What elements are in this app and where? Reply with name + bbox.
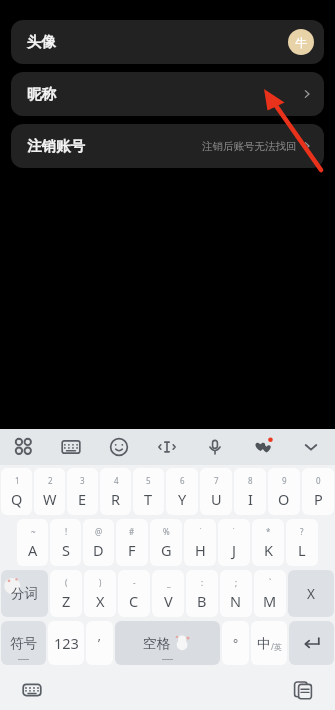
button[interactable]: _ [152, 570, 184, 617]
staticText: A [28, 540, 38, 560]
staticText: 5 [146, 475, 151, 486]
staticText: ° [233, 635, 239, 651]
button[interactable]: Apps [0, 429, 47, 465]
staticText: 8 [248, 475, 253, 486]
staticText: 2 [48, 475, 53, 486]
staticText: 分词 [11, 585, 38, 602]
button[interactable]: Voice input [191, 429, 239, 465]
staticText: N [230, 591, 242, 611]
staticText: X [96, 591, 105, 611]
button[interactable]: ( [50, 570, 82, 617]
staticText: ! [65, 526, 68, 537]
staticText: B [197, 591, 207, 611]
button[interactable]: 7 [200, 468, 232, 515]
staticText: 1 [15, 475, 20, 486]
button[interactable]: : [186, 570, 218, 617]
button[interactable]: ˙ [218, 519, 250, 566]
staticText: /英 [271, 641, 282, 652]
staticText: H [195, 540, 206, 560]
staticText: X [307, 585, 315, 603]
staticText: J [232, 540, 236, 560]
staticText: ~ [31, 526, 36, 537]
staticText: ; [235, 577, 238, 588]
staticText: G [161, 540, 172, 560]
staticText: 中 [257, 635, 271, 652]
staticText: W [43, 489, 57, 509]
button[interactable]: ? [286, 519, 318, 566]
staticText: S [62, 540, 70, 560]
button[interactable]: ˙ [184, 519, 216, 566]
staticText: E [78, 489, 87, 509]
staticText: C [129, 591, 139, 611]
staticText: # [129, 526, 135, 537]
staticText: Z [62, 591, 71, 611]
button[interactable]: # [116, 519, 148, 566]
button[interactable]: @ [83, 519, 114, 566]
button[interactable]: 9 [268, 468, 300, 515]
staticText: K [264, 540, 273, 560]
button[interactable]: * [252, 519, 284, 566]
staticText: 符号 [10, 635, 37, 652]
button[interactable]: Text cursor [143, 429, 191, 465]
button[interactable]: Avatar [288, 29, 314, 55]
staticText: ˙ [200, 526, 202, 537]
button[interactable]: 0 [302, 468, 334, 515]
staticText: @ [95, 526, 103, 537]
button[interactable]: 分词 [1, 570, 48, 617]
button[interactable]: Keyboard [47, 429, 95, 465]
button[interactable]: Clipboard [287, 674, 319, 706]
button[interactable]: 123 [48, 621, 84, 665]
staticText: 6 [180, 475, 185, 486]
button[interactable]: 昵称 [11, 72, 324, 116]
button[interactable]: ) [84, 570, 116, 617]
button[interactable]: 1 [1, 468, 32, 515]
button[interactable]: 2 [34, 468, 65, 515]
staticText: % [163, 526, 170, 537]
staticText: U [211, 489, 222, 509]
button[interactable]: ; [220, 570, 252, 617]
staticText: M [263, 591, 277, 611]
button[interactable]: Stickers [239, 429, 287, 465]
button[interactable]: ˋ [254, 570, 286, 617]
staticText: 4 [114, 475, 119, 486]
staticText: ˙ [233, 526, 235, 537]
staticText: ’ [98, 635, 101, 651]
button[interactable]: % [150, 519, 182, 566]
button[interactable]: ’ [86, 621, 113, 665]
button[interactable]: 8 [234, 468, 266, 515]
button[interactable]: 注销账号 [11, 124, 324, 168]
button[interactable]: ~ [17, 519, 48, 566]
button[interactable]: Emoji [95, 429, 143, 465]
staticText: 注销后账号无法找回 [202, 140, 297, 153]
button[interactable]: 符号 [1, 621, 46, 665]
staticText: L [298, 540, 306, 560]
staticText: ( [65, 577, 68, 588]
staticText: 空格 [143, 635, 170, 652]
button[interactable]: 5 [133, 468, 164, 515]
button[interactable]: 3 [67, 468, 98, 515]
staticText: V [164, 591, 173, 611]
staticText: 9 [282, 475, 287, 486]
staticText: 123 [54, 633, 79, 653]
staticText: _ [167, 577, 171, 588]
button[interactable]: 头像 [11, 20, 324, 64]
button[interactable]: Delete [288, 570, 334, 617]
button[interactable]: ° [222, 621, 249, 665]
button[interactable]: 6 [166, 468, 198, 515]
button[interactable]: Collapse keyboard [287, 429, 335, 465]
staticText: 昵称 [27, 85, 56, 103]
button[interactable]: Enter [289, 621, 334, 665]
button[interactable]: ! [50, 519, 81, 566]
staticText: I [248, 489, 253, 509]
staticText: Y [178, 489, 187, 509]
staticText: - [133, 577, 136, 588]
button[interactable]: Switch Chinese English [251, 621, 287, 665]
staticText: * [266, 526, 271, 537]
staticText: : [201, 577, 204, 588]
button[interactable]: Keyboard [16, 674, 48, 706]
button[interactable]: Space [115, 621, 220, 665]
button[interactable]: - [118, 570, 150, 617]
staticText: R [111, 489, 121, 509]
button[interactable]: 4 [100, 468, 131, 515]
staticText: 0 [316, 475, 321, 486]
